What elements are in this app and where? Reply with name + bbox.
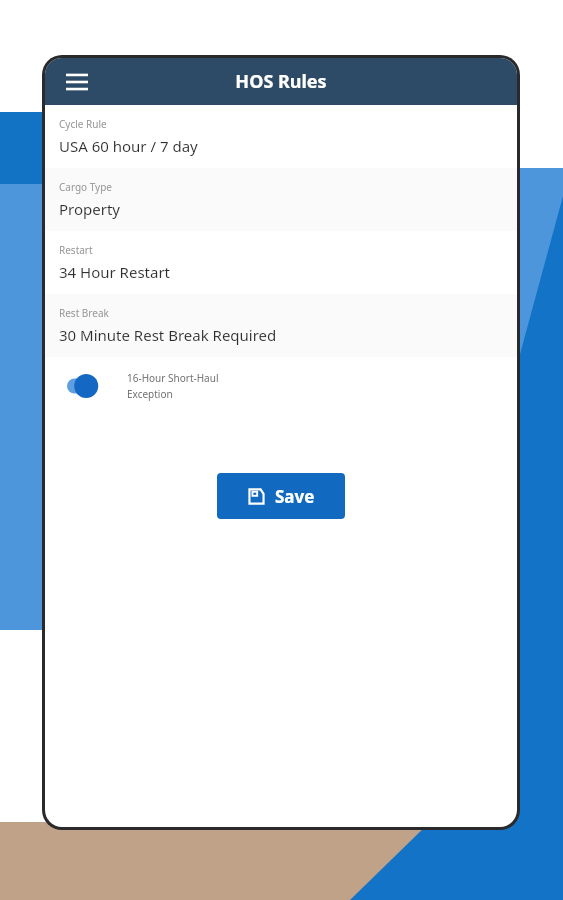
staticText: HOS Rules [235, 69, 327, 94]
staticText: Restart [59, 243, 93, 257]
staticText: Cargo Type [59, 180, 113, 194]
button[interactable]: Open navigation menu [57, 62, 97, 102]
button[interactable]: 16-Hour Short-Haul Exception toggle [67, 374, 107, 398]
staticText: Exception [127, 387, 173, 401]
staticText: Cycle Rule [59, 117, 107, 131]
staticText: Save [275, 485, 315, 508]
button[interactable]: Save [217, 473, 345, 519]
staticText: USA 60 hour / 7 day [59, 136, 198, 156]
staticText: 30 Minute Rest Break Required [59, 325, 277, 345]
button[interactable]: Cargo Type [45, 168, 517, 231]
staticText: 34 Hour Restart [59, 262, 171, 282]
button[interactable]: Restart [45, 231, 517, 294]
button[interactable]: Cycle Rule [45, 105, 517, 168]
staticText: 16-Hour Short-Haul [127, 371, 219, 385]
staticText: Rest Break [59, 306, 109, 320]
button[interactable]: Rest Break [45, 294, 517, 357]
staticText: Property [59, 199, 120, 219]
button[interactable]: 16-Hour Short-Haul Exception toggle [45, 357, 517, 415]
